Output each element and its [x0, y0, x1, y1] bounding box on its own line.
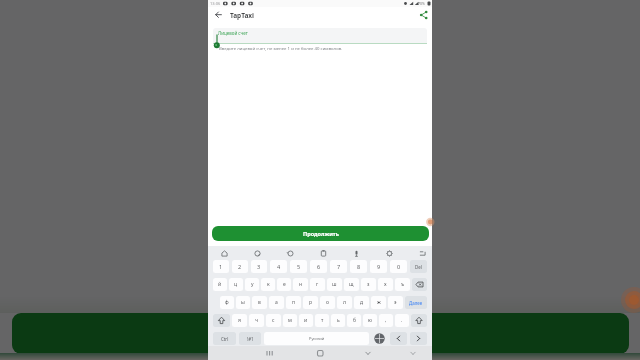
button[interactable]: п [286, 296, 301, 309]
staticText: Продолжить [303, 230, 339, 237]
staticText: п [292, 299, 296, 306]
button[interactable]: 1 [213, 260, 229, 273]
staticText: 6 [317, 263, 321, 270]
button[interactable]: , [379, 314, 393, 327]
button[interactable] [410, 332, 427, 345]
staticText: р [309, 299, 313, 306]
staticText: 7 [337, 263, 341, 270]
button[interactable]: а [269, 296, 284, 309]
button[interactable]: в [252, 296, 267, 309]
button[interactable] [212, 8, 225, 21]
button[interactable] [286, 249, 295, 258]
button[interactable]: Лицевой счет [213, 28, 427, 44]
staticText: !#1 [247, 336, 254, 342]
button[interactable] [220, 249, 229, 258]
button[interactable] [385, 249, 394, 258]
staticText: э [394, 299, 397, 306]
button[interactable]: р [303, 296, 318, 309]
staticText: Введите лицевой счет, не менее 1 и не бо… [219, 45, 343, 51]
button[interactable]: у [245, 278, 259, 291]
button[interactable]: э [388, 296, 403, 309]
staticText: ю [368, 317, 372, 324]
button[interactable]: 7 [330, 260, 347, 273]
button[interactable] [418, 9, 430, 21]
staticText: г [316, 281, 319, 288]
staticText: 2 [238, 263, 242, 270]
staticText: б [353, 317, 356, 324]
staticText: ф [225, 299, 229, 306]
staticText: ч [255, 317, 258, 324]
button[interactable]: 5 [290, 260, 307, 273]
button[interactable]: е [277, 278, 291, 291]
button[interactable]: ы [236, 296, 250, 309]
staticText: 4 [277, 263, 281, 270]
staticText: Ctrl [221, 336, 229, 342]
button[interactable]: т [315, 314, 329, 327]
button[interactable]: ф [220, 296, 234, 309]
button[interactable]: Ctrl [213, 332, 236, 345]
button[interactable]: 4 [270, 260, 287, 273]
button[interactable] [352, 249, 361, 258]
button[interactable]: 0 [390, 260, 407, 273]
staticText: х [384, 281, 387, 288]
button[interactable] [406, 347, 419, 360]
staticText: щ [349, 281, 354, 288]
button[interactable]: 6 [310, 260, 327, 273]
button[interactable]: н [293, 278, 308, 291]
button[interactable]: ь [331, 314, 345, 327]
button[interactable]: ц [229, 278, 243, 291]
button[interactable]: ъ [395, 278, 410, 291]
button[interactable]: к [261, 278, 275, 291]
button[interactable]: 2 [232, 260, 248, 273]
button[interactable]: м [283, 314, 297, 327]
staticText: й [218, 281, 222, 288]
button[interactable]: г [310, 278, 325, 291]
button[interactable]: !#1 [239, 332, 261, 345]
button[interactable]: ш [327, 278, 342, 291]
button[interactable]: 9 [370, 260, 387, 273]
button[interactable]: ч [249, 314, 264, 327]
button[interactable]: я [232, 314, 247, 327]
staticText: л [343, 299, 346, 306]
button[interactable]: й [213, 278, 227, 291]
button[interactable]: . [395, 314, 409, 327]
staticText: к [267, 281, 270, 288]
button[interactable]: Del [410, 260, 427, 273]
button[interactable] [372, 332, 387, 345]
staticText: ы [241, 299, 245, 306]
button[interactable] [314, 347, 327, 360]
staticText: с [272, 317, 275, 324]
staticText: . [401, 317, 403, 324]
button[interactable] [253, 249, 262, 258]
button[interactable]: Далее [405, 296, 427, 309]
button[interactable]: х [378, 278, 393, 291]
button[interactable] [263, 347, 276, 360]
button[interactable]: з [361, 278, 376, 291]
button[interactable]: д [354, 296, 369, 309]
button[interactable] [361, 347, 374, 360]
staticText: м [288, 317, 292, 324]
button[interactable]: 3 [251, 260, 267, 273]
staticText: TapTaxi [230, 11, 255, 20]
button[interactable]: 8 [350, 260, 367, 273]
button[interactable] [390, 332, 407, 345]
button[interactable]: и [299, 314, 313, 327]
button[interactable] [418, 249, 427, 258]
button[interactable] [411, 314, 427, 327]
button[interactable]: с [266, 314, 281, 327]
button[interactable]: б [347, 314, 361, 327]
button[interactable]: щ [344, 278, 359, 291]
staticText: н [299, 281, 303, 288]
button[interactable]: о [320, 296, 335, 309]
button[interactable]: Продолжить [212, 226, 429, 241]
button[interactable] [319, 249, 328, 258]
button[interactable] [213, 314, 230, 327]
staticText: , [385, 317, 387, 324]
button[interactable]: л [337, 296, 352, 309]
staticText: ъ [401, 281, 405, 288]
button[interactable] [412, 278, 427, 291]
button[interactable]: ж [371, 296, 386, 309]
button[interactable]: Русский [264, 332, 369, 345]
button[interactable]: ю [363, 314, 377, 327]
staticText: я [238, 317, 241, 324]
